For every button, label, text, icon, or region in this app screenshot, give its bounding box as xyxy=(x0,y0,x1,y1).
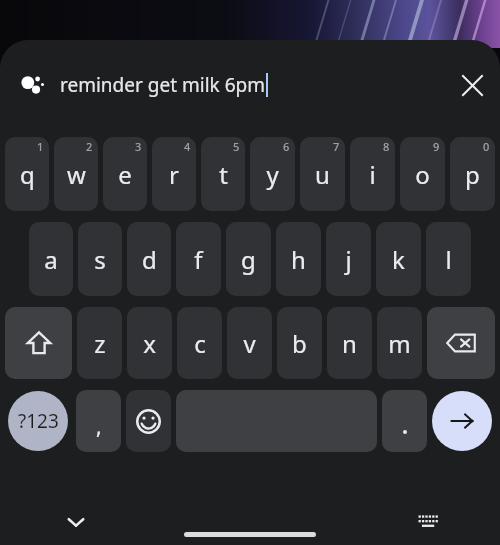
staticText: r xyxy=(169,158,179,191)
staticText: z xyxy=(94,327,106,360)
button[interactable]: Hide keyboard xyxy=(54,500,98,544)
staticText: m xyxy=(388,327,411,360)
staticText: d xyxy=(142,243,157,276)
staticText: g xyxy=(241,243,256,276)
staticText: 9 xyxy=(433,139,440,154)
button[interactable]: Clear xyxy=(444,57,500,113)
staticText: v xyxy=(243,327,256,360)
staticText: q xyxy=(20,158,35,191)
button[interactable]: x xyxy=(127,307,172,379)
button[interactable]: s xyxy=(78,222,122,296)
button[interactable]: l xyxy=(426,222,471,296)
button[interactable]: c xyxy=(177,307,222,379)
staticText: 8 xyxy=(383,139,390,154)
staticText: 3 xyxy=(135,139,142,154)
staticText: s xyxy=(94,243,106,276)
button[interactable]: n xyxy=(327,307,372,379)
button[interactable]: 9 xyxy=(400,137,445,211)
button[interactable]: 1 xyxy=(5,137,49,211)
button[interactable]: Enter xyxy=(432,391,492,451)
staticText: 2 xyxy=(86,139,93,154)
staticText: t xyxy=(219,158,228,191)
staticText: 6 xyxy=(283,139,290,154)
button[interactable]: Switch keyboard xyxy=(406,500,450,544)
button[interactable]: d xyxy=(127,222,171,296)
staticText: 0 xyxy=(483,139,490,154)
button[interactable] xyxy=(382,390,427,452)
button[interactable]: , xyxy=(76,390,121,452)
button[interactable]: h xyxy=(276,222,321,296)
button[interactable]: 0 xyxy=(450,137,495,211)
staticText: 5 xyxy=(233,139,240,154)
staticText: p xyxy=(465,158,480,191)
staticText: b xyxy=(292,327,307,360)
button[interactable]: a xyxy=(29,222,73,296)
staticText: c xyxy=(194,327,206,360)
staticText: , xyxy=(96,412,102,441)
button[interactable]: 3 xyxy=(103,137,147,211)
staticText: f xyxy=(194,243,203,276)
staticText: y xyxy=(266,158,279,191)
button[interactable]: j xyxy=(326,222,371,296)
button[interactable]: g xyxy=(226,222,271,296)
button[interactable]: k xyxy=(376,222,421,296)
staticText: j xyxy=(345,243,352,276)
button[interactable]: 7 xyxy=(300,137,345,211)
staticText: ?123 xyxy=(18,408,59,434)
button[interactable]: f xyxy=(176,222,221,296)
button[interactable]: Emoji xyxy=(126,390,171,452)
button[interactable]: ?123 xyxy=(8,391,68,451)
staticText: u xyxy=(315,158,330,191)
staticText: n xyxy=(342,327,357,360)
button[interactable]: Shift xyxy=(5,307,72,379)
button[interactable]: b xyxy=(277,307,322,379)
staticText: 7 xyxy=(333,139,340,154)
button[interactable]: 5 xyxy=(201,137,245,211)
button[interactable]: 6 xyxy=(250,137,295,211)
staticText: reminder get milk 6pm xyxy=(60,72,265,98)
staticText: i xyxy=(369,158,376,191)
staticText: o xyxy=(415,158,430,191)
staticText: e xyxy=(118,158,132,191)
staticText: h xyxy=(291,243,306,276)
button[interactable]: 8 xyxy=(350,137,395,211)
staticText: 1 xyxy=(37,139,44,154)
button[interactable]: Home xyxy=(184,532,316,537)
staticText: x xyxy=(143,327,156,360)
button[interactable]: Assistant xyxy=(16,68,50,102)
staticText: k xyxy=(392,243,405,276)
staticText: w xyxy=(67,158,86,191)
staticText: 4 xyxy=(184,139,191,154)
button[interactable]: 4 xyxy=(152,137,196,211)
button[interactable]: m xyxy=(377,307,422,379)
button[interactable]: Backspace xyxy=(427,307,495,379)
button[interactable]: v xyxy=(227,307,272,379)
button[interactable]: 2 xyxy=(54,137,98,211)
staticText: a xyxy=(44,243,58,276)
button[interactable]: z xyxy=(77,307,122,379)
staticText: l xyxy=(445,243,452,276)
